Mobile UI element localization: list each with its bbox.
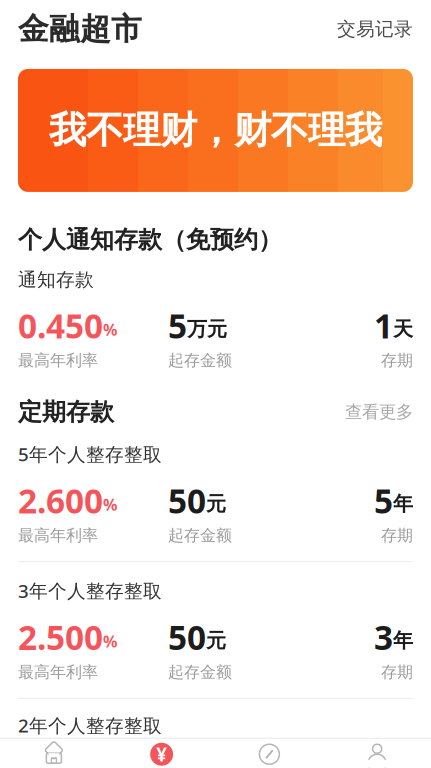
staticText: 年 bbox=[393, 492, 413, 516]
staticText: 0.450 bbox=[18, 303, 103, 348]
staticText: 1 bbox=[374, 303, 393, 348]
button[interactable]: 发现 bbox=[215, 739, 323, 768]
staticText: 5年个人整存整取 bbox=[18, 441, 162, 466]
button[interactable]: 3年个人整存整取 bbox=[0, 578, 431, 682]
button[interactable]: 首页 bbox=[0, 739, 108, 768]
staticText: 50 bbox=[168, 478, 206, 523]
staticText: 查看更多 bbox=[345, 401, 413, 422]
staticText: 个人通知存款（免预约） bbox=[18, 225, 282, 254]
staticText: 通知存款 bbox=[18, 268, 94, 291]
staticText: 交易记录 bbox=[337, 18, 413, 40]
button[interactable]: 查看更多 bbox=[335, 396, 413, 427]
staticText: 存期 bbox=[381, 526, 413, 545]
staticText: 5 bbox=[374, 478, 393, 523]
staticText: 元 bbox=[206, 492, 226, 516]
staticText: 定期存款 bbox=[18, 397, 114, 427]
staticText: 最高年利率 bbox=[18, 351, 98, 370]
staticText: 2年个人整存整取 bbox=[18, 713, 162, 738]
staticText: 最高年利率 bbox=[18, 526, 98, 545]
button[interactable]: 通知存款 bbox=[0, 268, 431, 370]
staticText: 50 bbox=[168, 615, 206, 659]
staticText: 元 bbox=[206, 628, 226, 653]
staticText: 起存金额 bbox=[168, 526, 232, 545]
staticText: % bbox=[103, 319, 117, 340]
button[interactable]: ¥ bbox=[108, 739, 216, 768]
staticText: 起存金额 bbox=[168, 662, 232, 682]
button[interactable]: 我不理财，财不理我 bbox=[18, 69, 413, 192]
staticText: 年 bbox=[393, 628, 413, 653]
button[interactable]: 交易记录 bbox=[327, 12, 413, 46]
staticText: ¥ bbox=[156, 742, 167, 767]
button[interactable]: 5年个人整存整取 bbox=[0, 441, 431, 545]
staticText: 起存金额 bbox=[168, 351, 232, 370]
staticText: 3 bbox=[374, 615, 393, 659]
staticText: 最高年利率 bbox=[18, 662, 98, 682]
staticText: 万元 bbox=[187, 317, 227, 341]
staticText: 3年个人整存整取 bbox=[18, 578, 162, 603]
staticText: 我不理财，财不理我 bbox=[49, 107, 382, 153]
staticText: % bbox=[103, 630, 117, 652]
staticText: 存期 bbox=[381, 351, 413, 370]
staticText: % bbox=[103, 494, 117, 515]
staticText: 存期 bbox=[381, 662, 413, 682]
button[interactable]: 我的 bbox=[323, 739, 431, 768]
staticText: 金融超市 bbox=[18, 10, 142, 48]
staticText: 2.500 bbox=[18, 615, 103, 659]
staticText: 2.600 bbox=[18, 478, 103, 523]
staticText: 5 bbox=[168, 303, 187, 348]
staticText: 天 bbox=[393, 317, 413, 341]
